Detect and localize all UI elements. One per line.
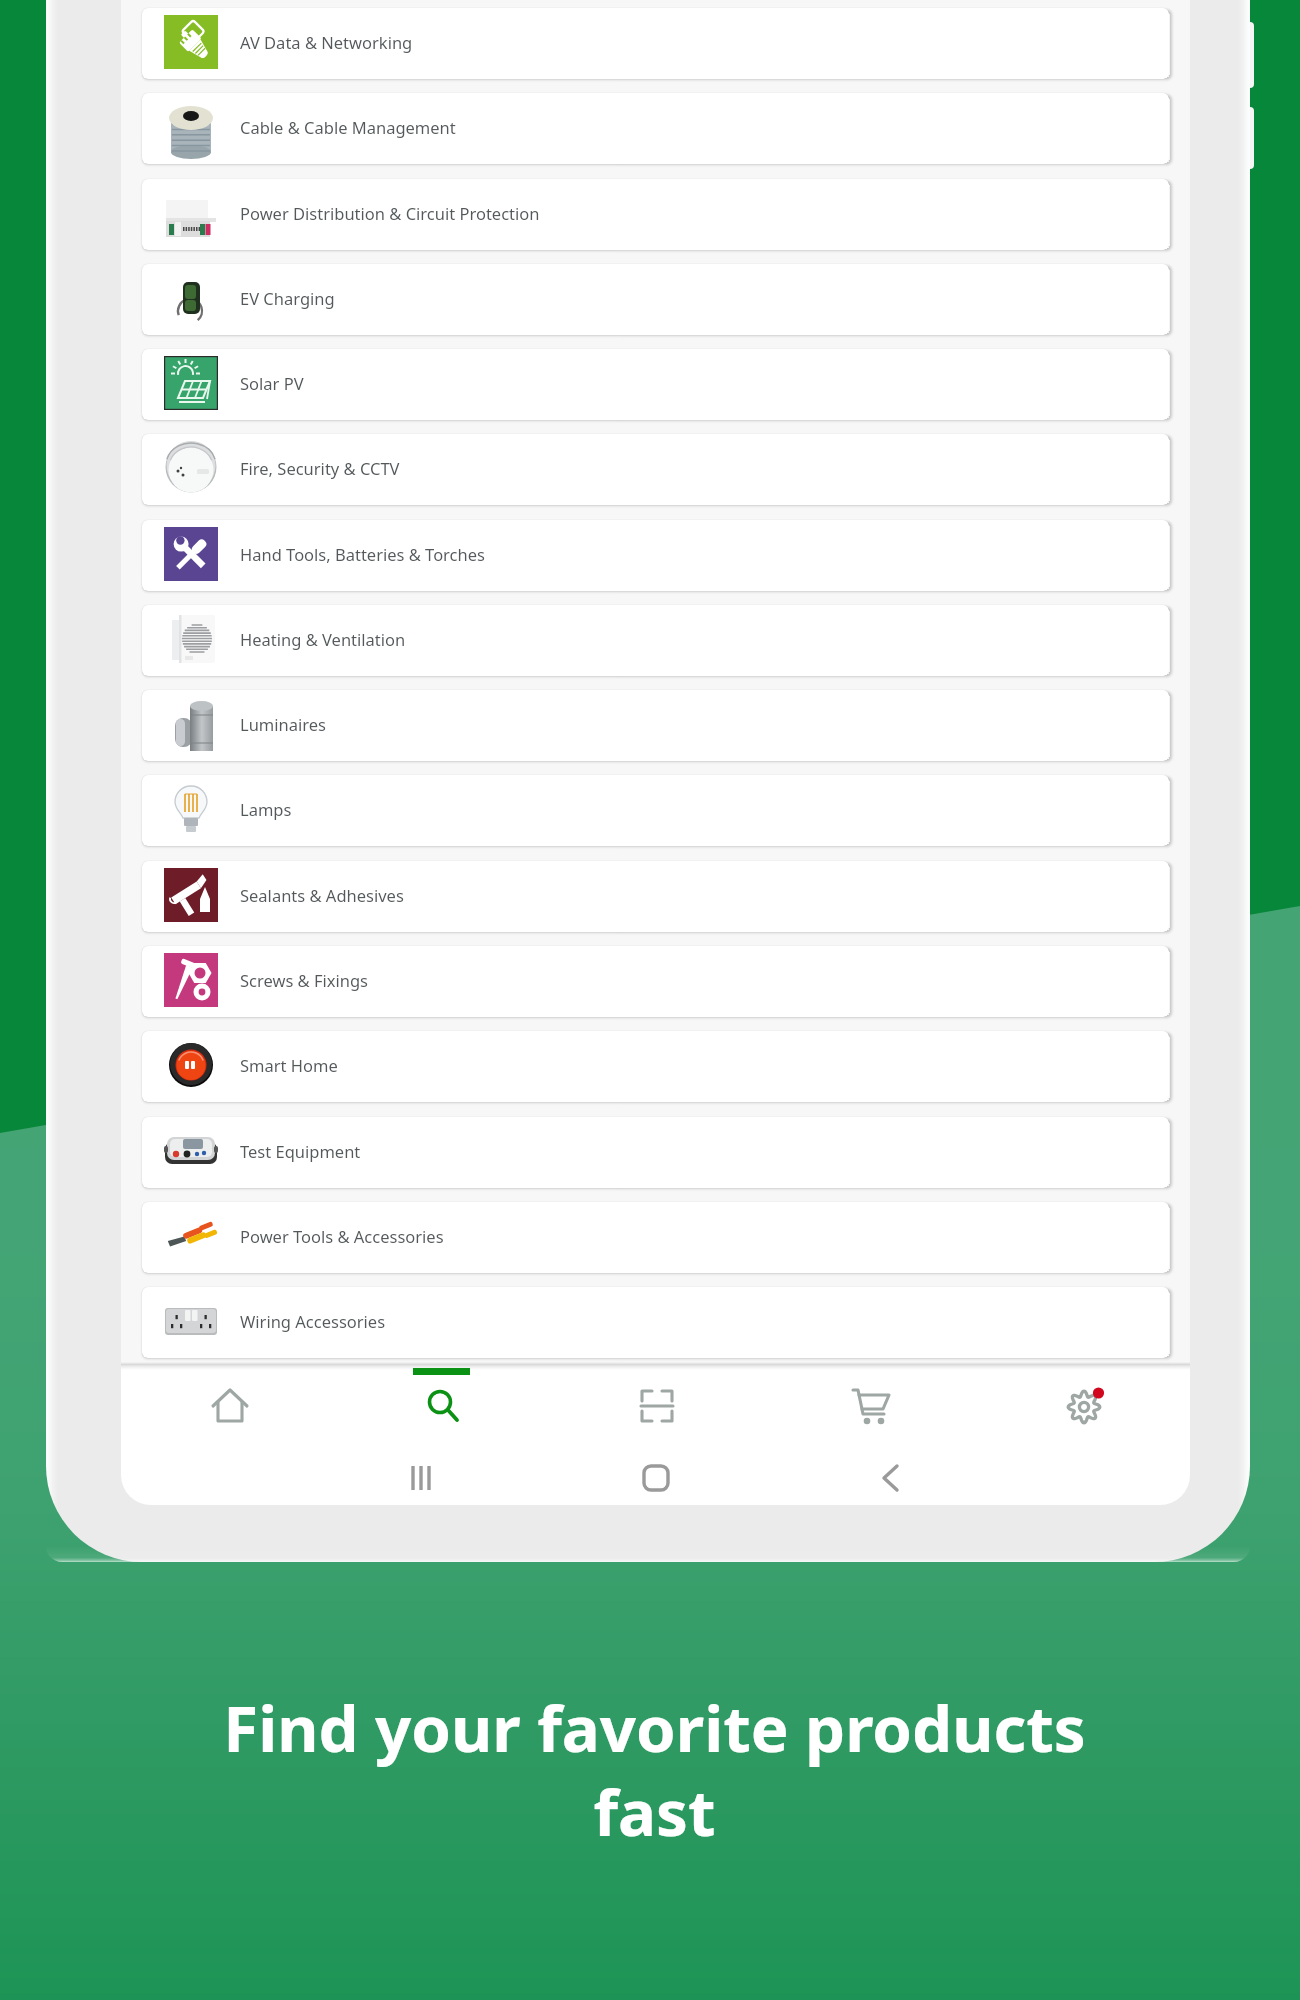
staticText: Luminaires	[240, 713, 326, 735]
button[interactable]: Settings	[976, 1365, 1190, 1453]
button[interactable]: Test Equipment	[142, 1117, 1169, 1188]
button[interactable]: Cart	[762, 1365, 976, 1453]
staticText: Screws & Fixings	[240, 969, 369, 991]
button[interactable]: Power Distribution & Circuit Protection	[142, 179, 1169, 250]
button[interactable]: EV Charging	[142, 264, 1169, 335]
button[interactable]: Cable & Cable Management	[142, 93, 1169, 164]
button[interactable]: Luminaires	[142, 690, 1169, 761]
button[interactable]: Search	[334, 1365, 548, 1453]
staticText: Power Distribution & Circuit Protection	[240, 202, 540, 224]
staticText: Solar PV	[240, 372, 304, 394]
button[interactable]: Screws & Fixings	[142, 946, 1169, 1017]
button[interactable]: Home	[121, 1365, 334, 1453]
staticText: Find your favorite products fast	[223, 1684, 1086, 1855]
button[interactable]: Scan	[548, 1365, 762, 1453]
staticText: Fire, Security & CCTV	[240, 457, 400, 479]
button[interactable]: Fire, Security & CCTV	[142, 434, 1169, 505]
button[interactable]: Wiring Accessories	[142, 1287, 1169, 1358]
button[interactable]: Lamps	[142, 775, 1169, 846]
staticText: EV Charging	[240, 287, 335, 309]
staticText: Cable & Cable Management	[240, 116, 456, 138]
staticText: Power Tools & Accessories	[240, 1225, 444, 1247]
staticText: Smart Home	[240, 1054, 338, 1076]
staticText: Hand Tools, Batteries & Torches	[240, 543, 485, 565]
button[interactable]: Hand Tools, Batteries & Torches	[142, 520, 1169, 591]
button[interactable]: AV Data & Networking	[142, 8, 1169, 79]
button[interactable]: Heating & Ventilation	[142, 605, 1169, 676]
staticText: Lamps	[240, 798, 292, 820]
staticText: AV Data & Networking	[240, 31, 413, 53]
button[interactable]: Smart Home	[142, 1031, 1169, 1102]
button[interactable]: Power Tools & Accessories	[142, 1202, 1169, 1273]
button[interactable]: Sealants & Adhesives	[142, 861, 1169, 932]
staticText: Test Equipment	[240, 1140, 361, 1162]
staticText: Heating & Ventilation	[240, 628, 406, 650]
button[interactable]: Solar PV	[142, 349, 1169, 420]
staticText: Wiring Accessories	[240, 1310, 386, 1332]
staticText: Sealants & Adhesives	[240, 884, 404, 906]
